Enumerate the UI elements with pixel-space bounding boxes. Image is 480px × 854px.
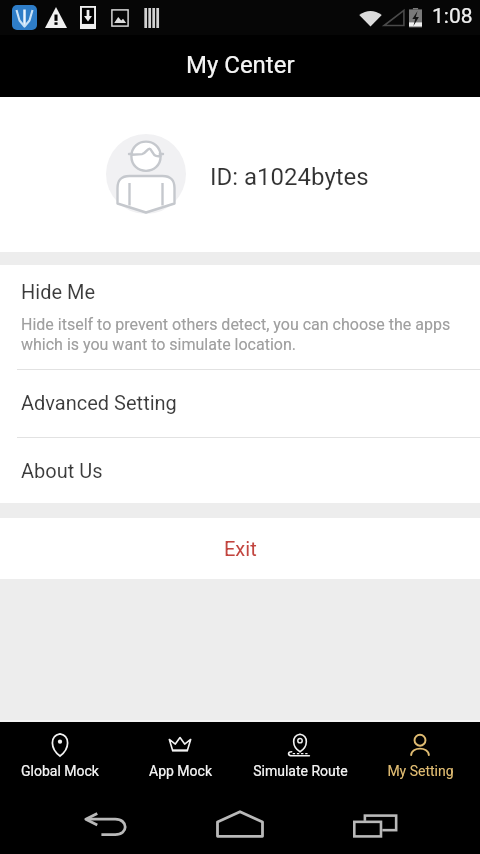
button[interactable]: Global Mock: [0, 722, 120, 795]
staticText: Hide Me: [21, 280, 96, 303]
staticText: Simulate Route: [253, 763, 348, 779]
button[interactable]: Home: [212, 796, 268, 852]
button[interactable]: About Us: [0, 438, 480, 503]
staticText: Advanced Setting: [21, 391, 177, 414]
button[interactable]: App Mock: [120, 722, 240, 795]
staticText: Global Mock: [21, 763, 99, 779]
staticText: About Us: [21, 459, 103, 482]
staticText: Hide itself to prevent others detect, yo…: [21, 315, 460, 354]
button[interactable]: Recent apps: [347, 798, 403, 854]
staticText: ID: a1024bytes: [210, 163, 369, 191]
staticText: My Center: [186, 51, 295, 79]
staticText: Exit: [224, 537, 257, 560]
staticText: App Mock: [149, 763, 212, 779]
button[interactable]: Advanced Setting: [0, 370, 480, 437]
button[interactable]: My Setting: [360, 722, 480, 795]
button[interactable]: Hide Me: [0, 265, 480, 369]
button[interactable]: Exit: [0, 518, 480, 579]
staticText: My Setting: [387, 763, 454, 779]
button[interactable]: Back: [78, 797, 134, 853]
button[interactable]: Simulate Route: [240, 722, 360, 795]
staticText: 1:08: [432, 4, 473, 29]
